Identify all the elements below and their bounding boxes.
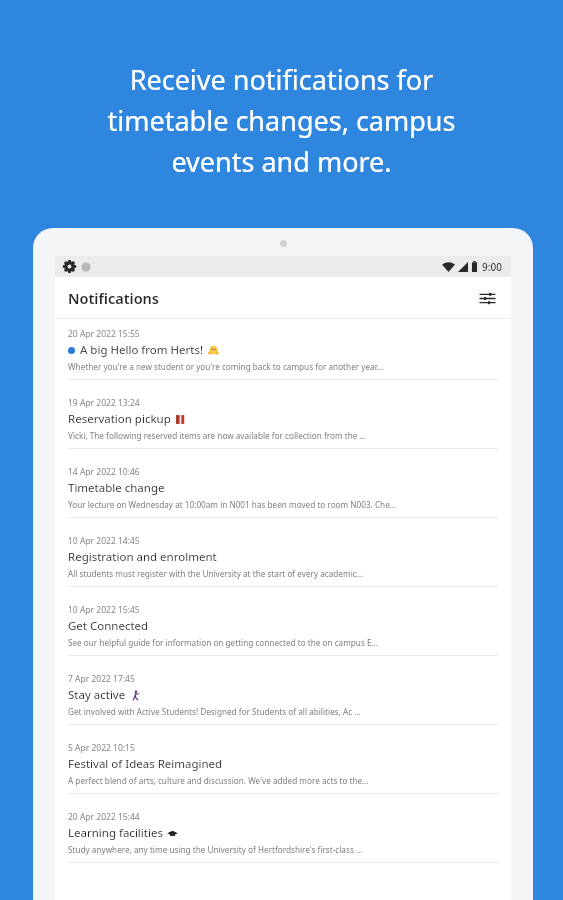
staticText: Get Connected: [68, 618, 149, 634]
button[interactable]: 14 Apr 2022 10:46: [55, 457, 511, 526]
staticText: Festival of Ideas Reimagined: [68, 756, 223, 772]
button[interactable]: Filter notifications: [472, 283, 502, 313]
staticText: 9:00: [482, 260, 502, 274]
staticText: 20 Apr 2022 15:44: [68, 811, 140, 823]
staticText: Timetable change: [68, 480, 165, 496]
button[interactable]: 20 Apr 2022 15:55: [55, 319, 511, 388]
staticText: 10 Apr 2022 15:45: [68, 604, 140, 616]
staticText: Get involved with Active Students! Desig…: [68, 706, 361, 717]
staticText: Reservation pickup: [68, 411, 171, 427]
button[interactable]: 7 Apr 2022 17:45: [55, 664, 511, 733]
staticText: Your lecture on Wednesday at 10:00am in …: [68, 499, 397, 510]
staticText: A perfect blend of arts, culture and dis…: [68, 775, 369, 786]
staticText: 5 Apr 2022 10:15: [68, 742, 135, 754]
staticText: See our helpful guide for information on…: [68, 637, 379, 648]
staticText: Receive notifications for timetable chan…: [18, 61, 545, 180]
staticText: 20 Apr 2022 15:55: [68, 328, 140, 340]
button[interactable]: 5 Apr 2022 10:15: [55, 733, 511, 802]
staticText: Stay active: [68, 687, 126, 703]
staticText: Registration and enrolment: [68, 549, 217, 565]
staticText: Vicki, The following reserved items are …: [68, 430, 366, 441]
staticText: A big Hello from Herts!: [80, 342, 204, 358]
staticText: All students must register with the Univ…: [68, 568, 364, 579]
staticText: Study anywhere, any time using the Unive…: [68, 844, 363, 855]
button[interactable]: 19 Apr 2022 13:24: [55, 388, 511, 457]
staticText: 14 Apr 2022 10:46: [68, 466, 140, 478]
button[interactable]: 10 Apr 2022 14:45: [55, 526, 511, 595]
staticText: 10 Apr 2022 14:45: [68, 535, 140, 547]
button[interactable]: 10 Apr 2022 15:45: [55, 595, 511, 664]
staticText: Whether you're a new student or you're c…: [68, 361, 384, 372]
staticText: 19 Apr 2022 13:24: [68, 397, 140, 409]
staticText: Notifications: [68, 288, 160, 308]
button[interactable]: 20 Apr 2022 15:44: [55, 802, 511, 871]
staticText: Learning facilities: [68, 825, 163, 841]
staticText: 7 Apr 2022 17:45: [68, 673, 135, 685]
